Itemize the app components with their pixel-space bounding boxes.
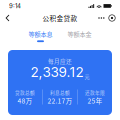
button[interactable]: 等额本金 (60, 30, 99, 42)
staticText: 等额本息 (28, 29, 52, 38)
staticText: 元 (85, 73, 90, 80)
button[interactable]: 等额本息 (21, 30, 60, 42)
staticText: 每月应还 (48, 57, 72, 65)
staticText: 22.17万 (47, 96, 72, 105)
button[interactable]: More options (96, 12, 106, 24)
staticText: 25年 (87, 96, 102, 105)
staticText: 48万 (18, 96, 33, 105)
staticText: 还款年限 (85, 89, 105, 96)
staticText: 公积金贷款 (42, 13, 77, 23)
staticText: 贷款总额 (15, 89, 35, 96)
button[interactable]: Back (2, 12, 13, 24)
staticText: 利息总额 (50, 89, 70, 96)
staticText: 2,339.12 (30, 64, 83, 80)
button[interactable]: Locate (107, 12, 117, 24)
staticText: 等额本金 (67, 29, 91, 38)
staticText: 9:14 (9, 2, 21, 10)
